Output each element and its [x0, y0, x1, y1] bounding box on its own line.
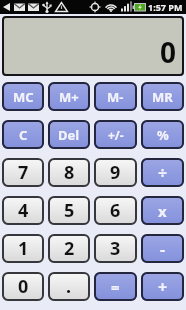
button[interactable]: M+	[48, 82, 90, 111]
button[interactable]: Del	[48, 120, 90, 149]
button[interactable]: C	[2, 120, 44, 149]
staticText: %	[157, 126, 169, 144]
staticText: MC	[13, 88, 34, 106]
button[interactable]: .	[48, 272, 90, 301]
button[interactable]: x	[141, 196, 184, 225]
staticText: 1:57 PM	[148, 1, 183, 13]
staticText: =	[111, 277, 120, 297]
staticText: M-	[107, 88, 124, 106]
staticText: +/-	[108, 127, 124, 143]
staticText: .	[66, 274, 72, 299]
staticText: 4	[18, 198, 29, 223]
button[interactable]: 1	[2, 234, 44, 263]
staticText: ÷	[158, 162, 168, 184]
button[interactable]: %	[141, 120, 184, 149]
button[interactable]: 4	[2, 196, 44, 225]
button[interactable]: 3	[94, 234, 137, 263]
staticText: 9	[110, 160, 121, 185]
button[interactable]: 6	[94, 196, 137, 225]
staticText: MR	[152, 88, 173, 106]
staticText: 8	[64, 160, 75, 185]
staticText: 0	[18, 274, 29, 299]
staticText: 1	[18, 236, 29, 261]
button[interactable]: MC	[2, 82, 44, 111]
button[interactable]: 8	[48, 158, 90, 187]
staticText: 7	[18, 160, 29, 185]
button[interactable]: -	[141, 234, 184, 263]
button[interactable]: +	[141, 272, 184, 301]
button[interactable]: M-	[94, 82, 137, 111]
staticText: -	[160, 238, 166, 260]
button[interactable]: MR	[141, 82, 184, 111]
button[interactable]: 5	[48, 196, 90, 225]
staticText: M+	[59, 88, 79, 106]
button[interactable]: ÷	[141, 158, 184, 187]
button[interactable]: =	[94, 272, 137, 301]
staticText: Del	[58, 126, 80, 144]
staticText: +	[158, 276, 168, 298]
staticText: C	[19, 126, 28, 144]
button[interactable]: 2	[48, 234, 90, 263]
staticText: x	[158, 201, 167, 221]
button[interactable]: 0	[2, 272, 44, 301]
staticText: 0	[160, 33, 177, 71]
button[interactable]: +/-	[94, 120, 137, 149]
button[interactable]: 7	[2, 158, 44, 187]
button[interactable]: 0	[2, 16, 184, 76]
staticText: 6	[110, 198, 121, 223]
staticText: 5	[64, 198, 75, 223]
button[interactable]: 9	[94, 158, 137, 187]
staticText: 3	[110, 236, 121, 261]
staticText: 2	[64, 236, 75, 261]
